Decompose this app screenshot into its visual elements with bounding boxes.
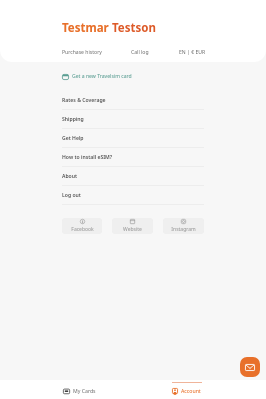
button[interactable]: Website xyxy=(112,218,153,234)
staticText: Instagram xyxy=(171,226,196,233)
button[interactable]: About xyxy=(62,167,204,186)
staticText: Get Help xyxy=(62,135,84,142)
staticText: Purchase history xyxy=(62,49,102,56)
button[interactable]: Messages xyxy=(240,357,260,377)
staticText: Account xyxy=(181,387,201,394)
staticText: Rates & Coverage xyxy=(62,97,106,104)
button[interactable]: Get a new Travelsim card xyxy=(62,70,132,83)
staticText: Facebook xyxy=(71,226,94,233)
staticText: How to install eSIM? xyxy=(62,154,113,161)
staticText: About xyxy=(62,173,78,180)
staticText: EN | € EUR xyxy=(179,49,206,56)
button[interactable]: Instagram xyxy=(163,218,204,234)
button[interactable]: Facebook xyxy=(62,218,102,234)
button[interactable]: Account xyxy=(133,380,240,399)
staticText: Testson xyxy=(112,20,156,36)
button[interactable]: Get Help xyxy=(62,129,204,148)
button[interactable]: Shipping xyxy=(62,110,204,129)
staticText: My Cards xyxy=(73,387,96,394)
button[interactable]: Call log xyxy=(131,49,149,56)
staticText: Website xyxy=(123,226,142,233)
staticText: Testmar xyxy=(62,20,112,36)
button[interactable]: EN | € EUR xyxy=(179,49,206,56)
staticText: Shipping xyxy=(62,116,84,123)
staticText: Get a new Travelsim card xyxy=(72,73,132,80)
button[interactable]: Log out xyxy=(62,186,204,205)
staticText: Call log xyxy=(131,49,149,56)
staticText: Log out xyxy=(62,192,81,199)
button[interactable]: My Cards xyxy=(26,380,133,399)
button[interactable]: Purchase history xyxy=(62,49,102,56)
button[interactable]: Rates & Coverage xyxy=(62,91,204,110)
button[interactable]: How to install eSIM? xyxy=(62,148,204,167)
